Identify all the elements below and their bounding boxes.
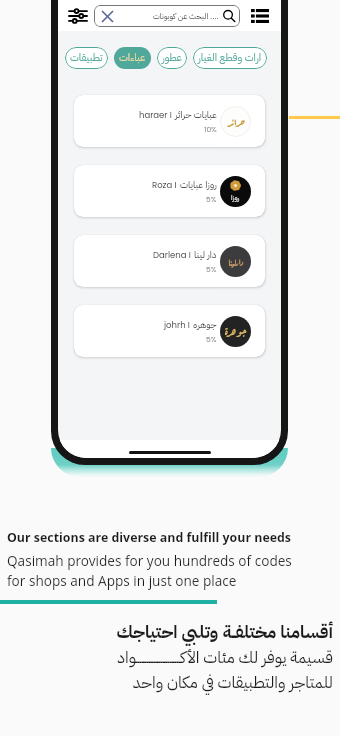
staticText: قسيمة يوفر لك مئات الأكـــــــــــــــــ… — [117, 645, 333, 670]
button[interactable]: johrh I — [74, 305, 265, 357]
staticText: تطبيقات — [70, 50, 103, 66]
staticText: دار لينا — [194, 248, 217, 262]
staticText: ارات وقطع الغيار — [198, 50, 262, 66]
staticText: 5% — [206, 264, 217, 274]
staticText: جوهرة — [225, 324, 247, 340]
staticText: روزا عبايات — [180, 178, 217, 192]
button[interactable]: Clear — [94, 5, 240, 27]
staticText: 10% — [204, 124, 217, 134]
staticText: عباءات — [119, 50, 146, 66]
button[interactable]: Filter — [67, 5, 89, 27]
button[interactable]: ارات وقطع الغيار — [193, 47, 267, 69]
staticText: Our sections are diverse and fulfill you… — [7, 529, 292, 546]
staticText: for shops and Apps in just one place — [7, 571, 237, 590]
button[interactable]: Darlena I — [74, 235, 265, 287]
staticText: Qasimah provides for you hundreds of cod… — [7, 551, 292, 570]
staticText: دارلينا — [228, 254, 244, 269]
button[interactable]: عطور — [157, 47, 187, 69]
staticText: عبايات حرائر — [175, 108, 217, 122]
button[interactable]: تطبيقات — [65, 47, 108, 69]
staticText: عطور — [162, 50, 182, 66]
staticText: البحث عن كوبونات .... — [153, 10, 219, 22]
staticText: للمتاجر والتطبيقات في مكان واحد — [132, 670, 333, 695]
button[interactable]: عباءات — [114, 47, 151, 69]
staticText: haraer I — [139, 109, 172, 121]
staticText: Darlena I — [153, 249, 191, 261]
button[interactable]: Roza I — [74, 165, 265, 217]
other: Clear — [101, 10, 113, 22]
staticText: 5% — [206, 334, 217, 344]
staticText: 5% — [206, 194, 217, 204]
staticText: johrh I — [164, 319, 190, 331]
staticText: Roza I — [152, 179, 177, 191]
staticText: حرائر — [227, 114, 245, 130]
button[interactable]: haraer I — [74, 95, 265, 147]
staticText: أقسامنا مختلفــة وتلبي احتياجك — [116, 619, 333, 645]
staticText: روزا — [231, 192, 240, 203]
button[interactable]: List view — [249, 5, 271, 27]
staticText: جوهره — [193, 318, 217, 332]
